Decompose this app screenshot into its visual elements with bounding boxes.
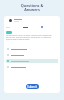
button[interactable] <box>6 59 58 63</box>
staticText: Submit <box>27 85 38 89</box>
staticText: Questions & Answers <box>0 3 64 13</box>
button[interactable]: Submit <box>26 84 39 89</box>
button[interactable] <box>6 65 58 69</box>
button[interactable] <box>6 47 58 51</box>
staticText: Lorem ipsum dolor sit amet consec tetur … <box>6 34 52 40</box>
button[interactable] <box>6 53 58 57</box>
